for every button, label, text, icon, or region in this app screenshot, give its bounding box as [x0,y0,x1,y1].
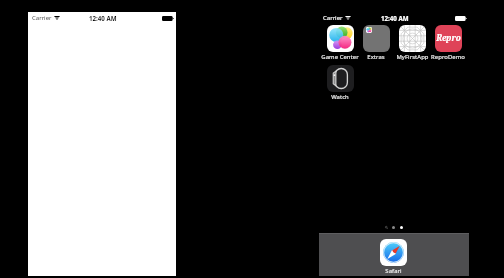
staticText: Extras [367,53,385,61]
staticText: MyFirstApp [396,53,429,61]
staticText: 12:40 AM [89,14,117,22]
staticText: 12:40 AM [381,14,409,22]
staticText: ReproDemo [431,53,465,61]
button[interactable]: MyFirstApp [389,25,435,62]
button[interactable]: Safari [370,239,416,276]
staticText: Safari [385,267,402,275]
staticText: Carrier [323,14,343,22]
button[interactable]: Watch [317,65,363,102]
staticText: Game Center [321,53,359,61]
button[interactable]: Extras [353,25,399,62]
button[interactable]: Search [385,226,388,229]
staticText: Carrier [32,14,52,22]
staticText: Watch [331,93,349,101]
button[interactable]: Repro [425,25,471,62]
staticText: Repro [436,32,461,43]
button[interactable]: Game Center [317,25,363,62]
